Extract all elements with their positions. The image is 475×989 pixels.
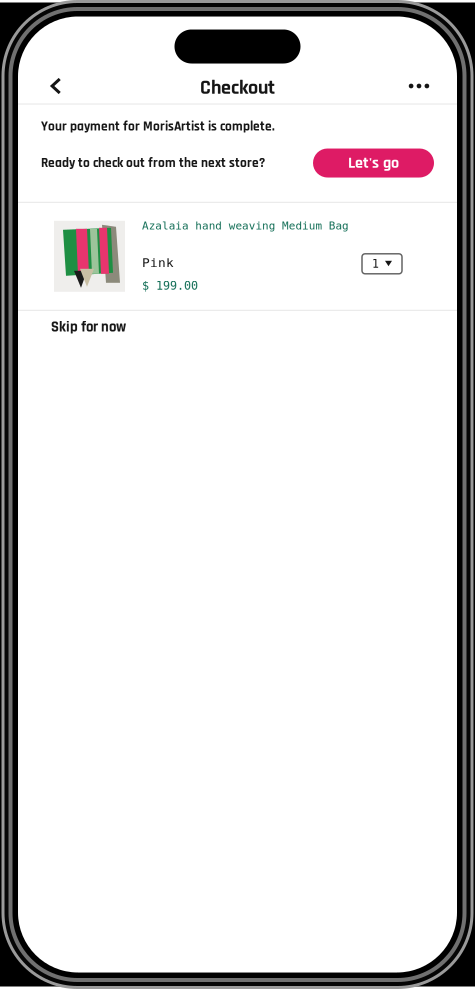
staticText: Checkout [200, 75, 275, 101]
button[interactable]: Skip for now [49, 313, 128, 349]
staticText: 1 [372, 257, 379, 270]
staticText: Let's go [348, 153, 399, 173]
staticText: Ready to check out from the next store? [41, 154, 265, 171]
button[interactable]: Let's go [313, 148, 434, 177]
staticText: Azalaia hand weaving Medium Bag [142, 219, 349, 232]
staticText: Pink [142, 255, 174, 270]
button[interactable]: Quantity [362, 254, 402, 274]
button[interactable]: More [404, 71, 434, 101]
staticText: Skip for now [51, 318, 126, 337]
staticText: Your payment for MorisArtist is complete… [41, 118, 275, 135]
button[interactable]: Back [41, 71, 71, 101]
staticText: $ 199.00 [142, 279, 198, 293]
